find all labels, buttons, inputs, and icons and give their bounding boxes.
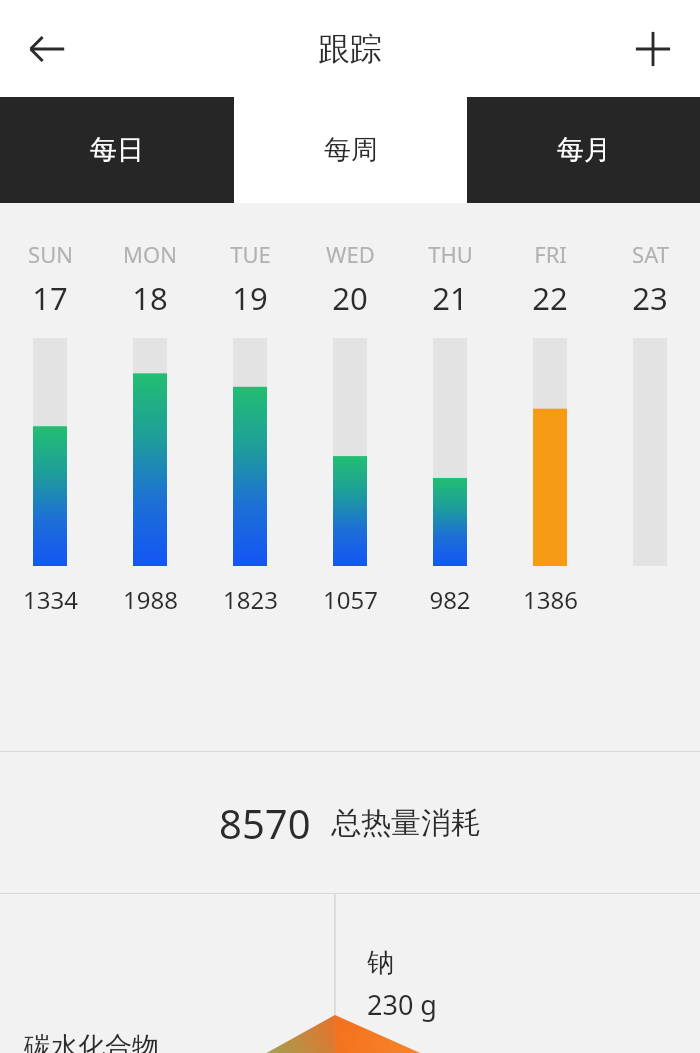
staticText: 18 xyxy=(132,277,168,319)
staticText: 1386 xyxy=(523,583,578,616)
button[interactable] xyxy=(500,338,600,566)
staticText: 钠 xyxy=(367,946,394,980)
staticText: 982 xyxy=(429,583,471,616)
button[interactable] xyxy=(400,338,500,566)
button[interactable] xyxy=(200,338,300,566)
staticText: 碳水化合物 xyxy=(24,1030,159,1053)
staticText: 21 xyxy=(432,277,468,319)
staticText: 8570 xyxy=(219,796,311,850)
staticText: 1988 xyxy=(123,583,178,616)
button[interactable]: 每日 xyxy=(0,97,234,203)
staticText: 跟踪 xyxy=(318,29,382,69)
staticText: SUN xyxy=(28,239,73,269)
button[interactable]: 每月 xyxy=(467,97,700,203)
button[interactable] xyxy=(600,338,700,566)
staticText: 20 xyxy=(332,277,368,319)
staticText: 每周 xyxy=(324,133,378,167)
button[interactable]: Back xyxy=(15,17,79,81)
button[interactable] xyxy=(0,338,100,566)
button[interactable]: 每周 xyxy=(234,97,467,203)
staticText: THU xyxy=(428,239,473,269)
staticText: 1823 xyxy=(223,583,278,616)
staticText: 230 g xyxy=(367,986,437,1023)
staticText: 1057 xyxy=(323,583,378,616)
staticText: SAT xyxy=(632,239,669,269)
staticText: 总热量消耗 xyxy=(331,804,481,842)
staticText: 17 xyxy=(32,277,68,319)
staticText: WED xyxy=(326,239,375,269)
button[interactable] xyxy=(100,338,200,566)
button[interactable] xyxy=(300,338,400,566)
staticText: 19 xyxy=(232,277,268,319)
staticText: MON xyxy=(123,239,177,269)
staticText: 22 xyxy=(532,277,568,319)
staticText: FRI xyxy=(534,239,567,269)
staticText: 1334 xyxy=(23,583,78,616)
button[interactable]: Add xyxy=(621,17,685,81)
staticText: 每月 xyxy=(557,133,611,167)
staticText: TUE xyxy=(230,239,271,269)
staticText: 23 xyxy=(632,277,668,319)
staticText: 每日 xyxy=(90,133,144,167)
